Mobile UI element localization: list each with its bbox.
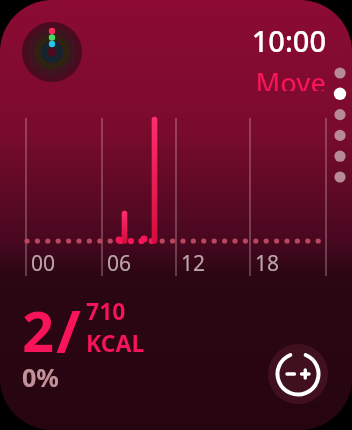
button[interactable]: Activity rings [22, 22, 82, 82]
staticText: 710 [86, 295, 126, 326]
staticText: 18 [255, 249, 280, 278]
staticText: / [56, 289, 81, 371]
staticText: 00 [31, 249, 56, 278]
staticText: 10:00 [251, 21, 326, 60]
staticText: 12 [181, 249, 206, 278]
staticText: Move [255, 64, 326, 91]
button[interactable]: Adjust goal [268, 344, 328, 404]
staticText: 0% [22, 360, 59, 394]
staticText: 06 [107, 249, 132, 278]
staticText: KCAL [86, 327, 145, 358]
staticText: 2 [22, 292, 55, 368]
